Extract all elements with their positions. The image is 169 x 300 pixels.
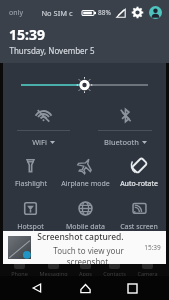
staticText: Flashlight (15, 179, 47, 189)
staticText: 88% (98, 8, 111, 17)
staticText: Contacts (103, 270, 126, 277)
button[interactable]: Screenshot captured. (3, 231, 166, 264)
staticText: Camera (137, 270, 158, 277)
button[interactable]: WiFi (3, 107, 84, 147)
button[interactable]: Back (26, 277, 48, 299)
button[interactable]: User profile (149, 6, 162, 19)
button[interactable]: Airplane mode (58, 157, 112, 189)
staticText: Thursday, November 5 (9, 45, 95, 56)
button[interactable]: Hotspot (3, 200, 58, 232)
staticText: No SIM c (41, 8, 73, 18)
staticText: Bluetooth (104, 137, 139, 147)
staticText: Auto-rotate (120, 179, 158, 189)
staticText: only (9, 8, 23, 18)
staticText: Hotspot (17, 222, 44, 232)
button[interactable]: Flashlight (3, 157, 58, 189)
button[interactable]: Cast screen (112, 200, 166, 232)
button[interactable]: Brightness (3, 77, 166, 93)
staticText: Airplane mode (61, 179, 110, 189)
button[interactable]: Auto-rotate (112, 157, 166, 189)
staticText: 15:39 (144, 243, 161, 252)
button[interactable]: Recent apps (121, 277, 143, 299)
staticText: Cast screen (120, 222, 158, 232)
button[interactable]: Mobile data (58, 200, 112, 232)
staticText: Messaging (39, 270, 68, 277)
staticText: Touch to view your screenshot. (37, 245, 140, 264)
staticText: Screenshot captured. (37, 231, 124, 243)
button[interactable]: Home (74, 277, 96, 299)
button[interactable]: Settings (132, 7, 143, 18)
staticText: Mobile data (66, 222, 105, 232)
button[interactable]: Bluetooth (84, 107, 166, 147)
staticText: WiFi (32, 137, 47, 147)
staticText: Apps (79, 270, 92, 277)
staticText: Phone (11, 270, 28, 277)
staticText: 15:39 (9, 25, 45, 44)
